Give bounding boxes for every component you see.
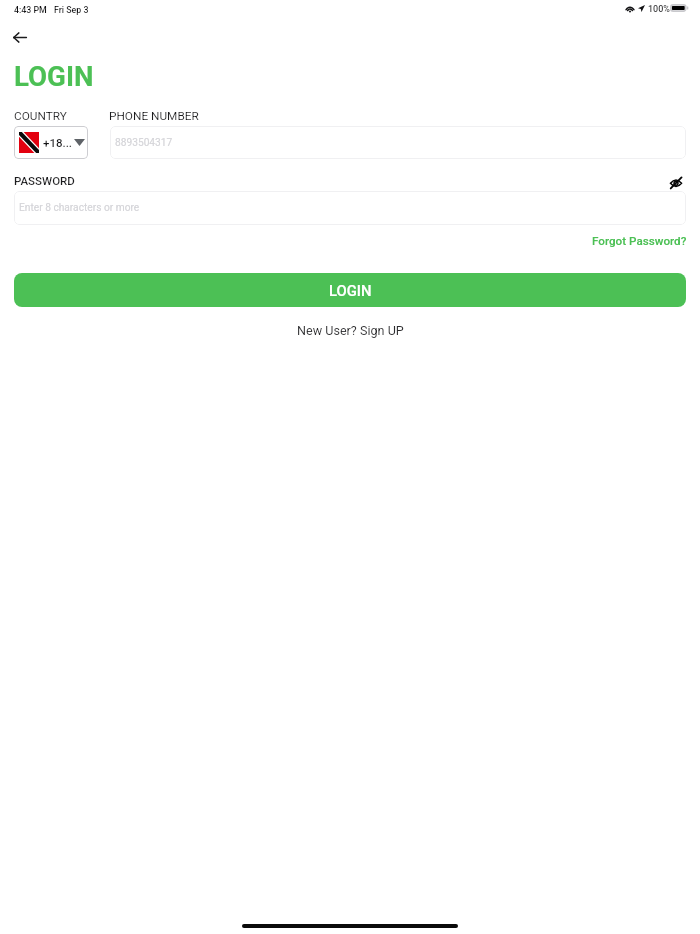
button[interactable]: Enter 8 characters or more [14,191,686,225]
button[interactable]: 8893504317 [110,126,686,159]
staticText: LOGIN [329,282,372,299]
staticText: PASSWORD [14,174,75,187]
staticText: 4:43 PM [14,5,47,15]
staticText: 100% [648,4,670,15]
staticText: Enter 8 characters or more [19,202,140,214]
button[interactable]: Back [6,23,34,51]
button[interactable]: LOGIN [14,273,686,307]
staticText: Fri Sep 3 [54,5,89,15]
staticText: 8893504317 [115,137,173,149]
staticText: LOGIN [14,60,94,92]
button[interactable]: New User? Sign UP [297,323,404,338]
staticText: COUNTRY [14,109,67,123]
button[interactable]: +18... [14,126,88,159]
staticText: PHONE NUMBER [109,109,199,123]
button[interactable]: Show password [663,170,689,196]
staticText: Forgot Password? [592,234,687,248]
staticText: +18... [43,136,73,149]
button[interactable]: Forgot Password? [592,234,687,248]
